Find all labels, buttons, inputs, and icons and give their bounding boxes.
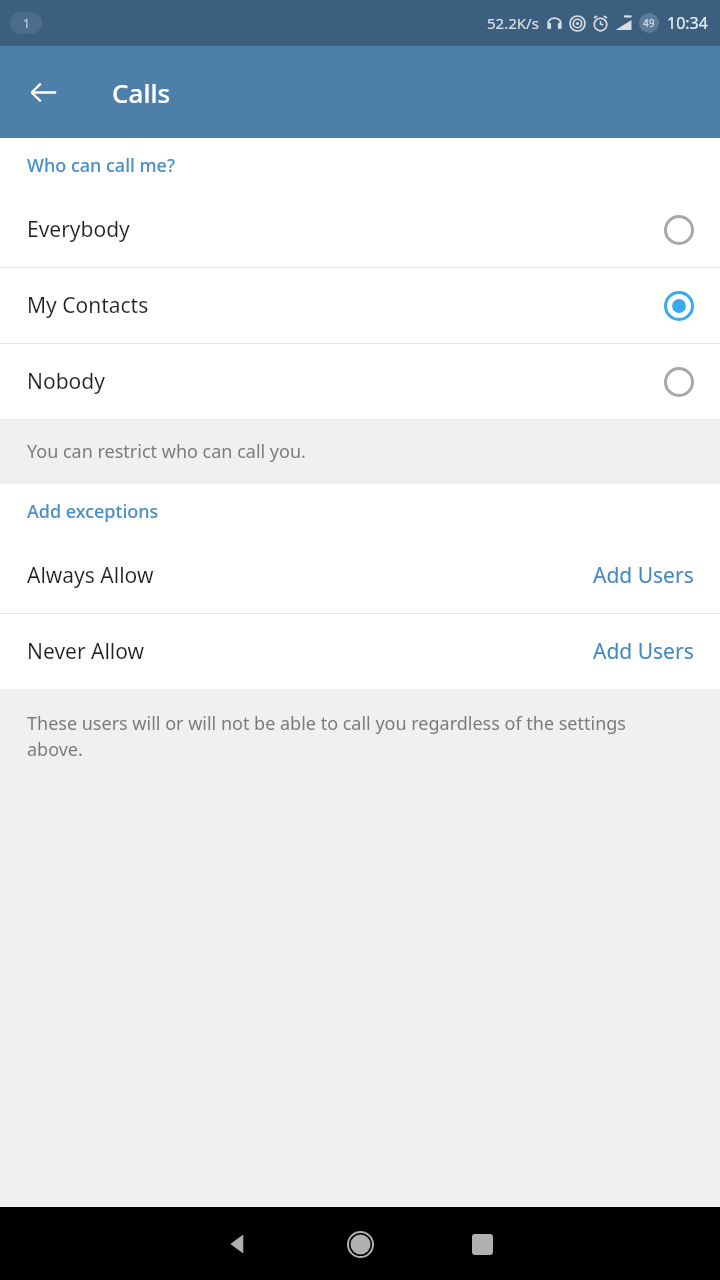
staticText: Add exceptions: [27, 499, 159, 524]
button[interactable]: Nobody: [0, 344, 720, 419]
button[interactable]: Everybody: [0, 192, 720, 267]
button[interactable]: Back: [202, 1208, 274, 1280]
staticText: My Contacts: [27, 291, 664, 320]
staticText: 52.2K/s: [487, 13, 539, 33]
button[interactable]: Back: [15, 64, 71, 120]
button[interactable]: Never Allow: [0, 614, 720, 689]
staticText: 10:34: [667, 12, 708, 34]
staticText: Who can call me?: [27, 153, 175, 178]
staticText: Nobody: [27, 367, 664, 396]
staticText: Never Allow: [27, 637, 145, 666]
staticText: Add Users: [593, 637, 694, 666]
staticText: You can restrict who can call you.: [27, 439, 306, 464]
button[interactable]: Recent apps: [446, 1208, 518, 1280]
staticText: Calls: [112, 75, 171, 110]
button[interactable]: My Contacts: [0, 268, 720, 343]
staticText: Everybody: [27, 215, 664, 244]
staticText: These users will or will not be able to …: [27, 711, 650, 762]
staticText: 1: [23, 15, 30, 31]
staticText: Always Allow: [27, 561, 154, 590]
button[interactable]: Always Allow: [0, 538, 720, 613]
staticText: 49: [643, 16, 655, 30]
button[interactable]: Home: [324, 1208, 396, 1280]
staticText: Add Users: [593, 561, 694, 590]
